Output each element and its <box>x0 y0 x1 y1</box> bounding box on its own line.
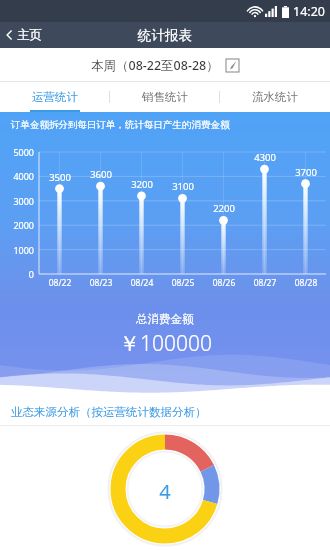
staticText: 本周（08-22至08-28） <box>91 57 219 74</box>
staticText: 3000 <box>0 195 34 207</box>
staticText: 08/27 <box>248 277 282 289</box>
button[interactable]: 流水统计 <box>220 82 330 112</box>
staticText: 5000 <box>0 146 34 158</box>
staticText: 08/28 <box>289 277 323 289</box>
staticText: ￥100000 <box>119 329 212 358</box>
staticText: 销售统计 <box>142 90 188 104</box>
staticText: 总消费金额 <box>136 312 194 326</box>
staticText: 3500 <box>45 171 75 184</box>
staticText: 4000 <box>0 170 34 182</box>
staticText: 3100 <box>168 180 198 193</box>
staticText: 3200 <box>127 178 157 191</box>
button[interactable]: Edit date range <box>226 59 239 72</box>
staticText: 14:20 <box>293 3 325 20</box>
staticText: 运营统计 <box>32 90 78 104</box>
staticText: 08/22 <box>43 277 77 289</box>
staticText: 4300 <box>250 151 280 164</box>
staticText: 3600 <box>86 168 116 181</box>
staticText: 0 <box>0 268 34 280</box>
staticText: 08/23 <box>84 277 118 289</box>
staticText: 统计报表 <box>138 27 192 44</box>
staticText: 2000 <box>0 219 34 231</box>
staticText: 08/24 <box>125 277 159 289</box>
staticText: 业态来源分析（按运营统计数据分析） <box>11 405 207 419</box>
staticText: 1000 <box>0 244 34 256</box>
button[interactable]: 销售统计 <box>110 82 220 112</box>
staticText: 2200 <box>209 202 239 215</box>
staticText: 3700 <box>291 166 321 179</box>
staticText: 主页 <box>17 27 42 43</box>
button[interactable]: 运营统计 <box>0 82 110 112</box>
staticText: 4 <box>0 478 330 505</box>
button[interactable]: 业态来源分析（按运营统计数据分析） <box>0 398 330 426</box>
staticText: 订单金额拆分到每日订单，统计每日产生的消费金额 <box>11 119 230 131</box>
staticText: 08/26 <box>207 277 241 289</box>
staticText: 流水统计 <box>252 90 298 104</box>
staticText: 08/25 <box>166 277 200 289</box>
button[interactable]: 主页 <box>0 27 50 43</box>
